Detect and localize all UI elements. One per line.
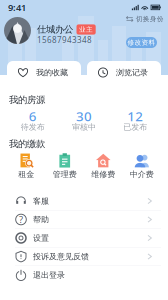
staticText: 9:41 — [8, 1, 26, 14]
staticText: 6 — [29, 107, 37, 125]
staticText: 已发布 — [123, 122, 147, 132]
button[interactable]: ? — [7, 210, 161, 228]
staticText: 管理费 — [53, 169, 77, 179]
staticText: ? — [19, 213, 23, 226]
staticText: 我的缴款 — [9, 138, 45, 150]
staticText: 我的房源 — [9, 94, 45, 106]
staticText: 业主 — [79, 25, 93, 34]
staticText: 设置 — [33, 233, 49, 243]
button[interactable]: 退出登录 — [7, 266, 161, 284]
button[interactable]: 管理费 — [45, 150, 84, 181]
staticText: 30 — [76, 107, 92, 125]
staticText: 租金 — [18, 169, 34, 179]
staticText: 投诉及意见反馈 — [33, 252, 89, 261]
staticText: 仕城办公 — [37, 24, 73, 35]
staticText: 审核中 — [72, 122, 96, 132]
staticText: 12 — [127, 107, 143, 125]
button[interactable]: 6 — [7, 107, 58, 134]
button[interactable]: 12 — [110, 107, 161, 134]
staticText: 浏览记录 — [116, 68, 148, 77]
button[interactable]: 维修费 — [84, 150, 122, 181]
button[interactable]: 切换身份 — [126, 15, 164, 23]
staticText: 待发布 — [21, 122, 45, 132]
staticText: 修改资料 — [127, 38, 155, 47]
staticText: 客服 — [33, 196, 49, 206]
staticText: 中介费 — [130, 169, 154, 179]
button[interactable]: 客服 — [7, 192, 161, 210]
button[interactable]: 浏览记录 — [87, 61, 161, 84]
staticText: 切换身份 — [136, 15, 164, 23]
staticText: 维修费 — [91, 169, 115, 179]
staticText: 帮助 — [33, 215, 49, 224]
button[interactable]: 租金 — [7, 150, 45, 181]
staticText: 退出登录 — [33, 270, 65, 280]
button[interactable]: 中介费 — [122, 150, 161, 181]
button[interactable]: 我的收藏 — [7, 61, 81, 84]
staticText: 15687943348 — [37, 35, 92, 45]
button[interactable]: 设置 — [7, 229, 161, 247]
button[interactable]: 修改资料 — [126, 37, 157, 48]
staticText: 我的收藏 — [36, 68, 68, 77]
button[interactable]: 投诉及意见反馈 — [7, 247, 161, 265]
button[interactable]: 30 — [58, 107, 110, 134]
